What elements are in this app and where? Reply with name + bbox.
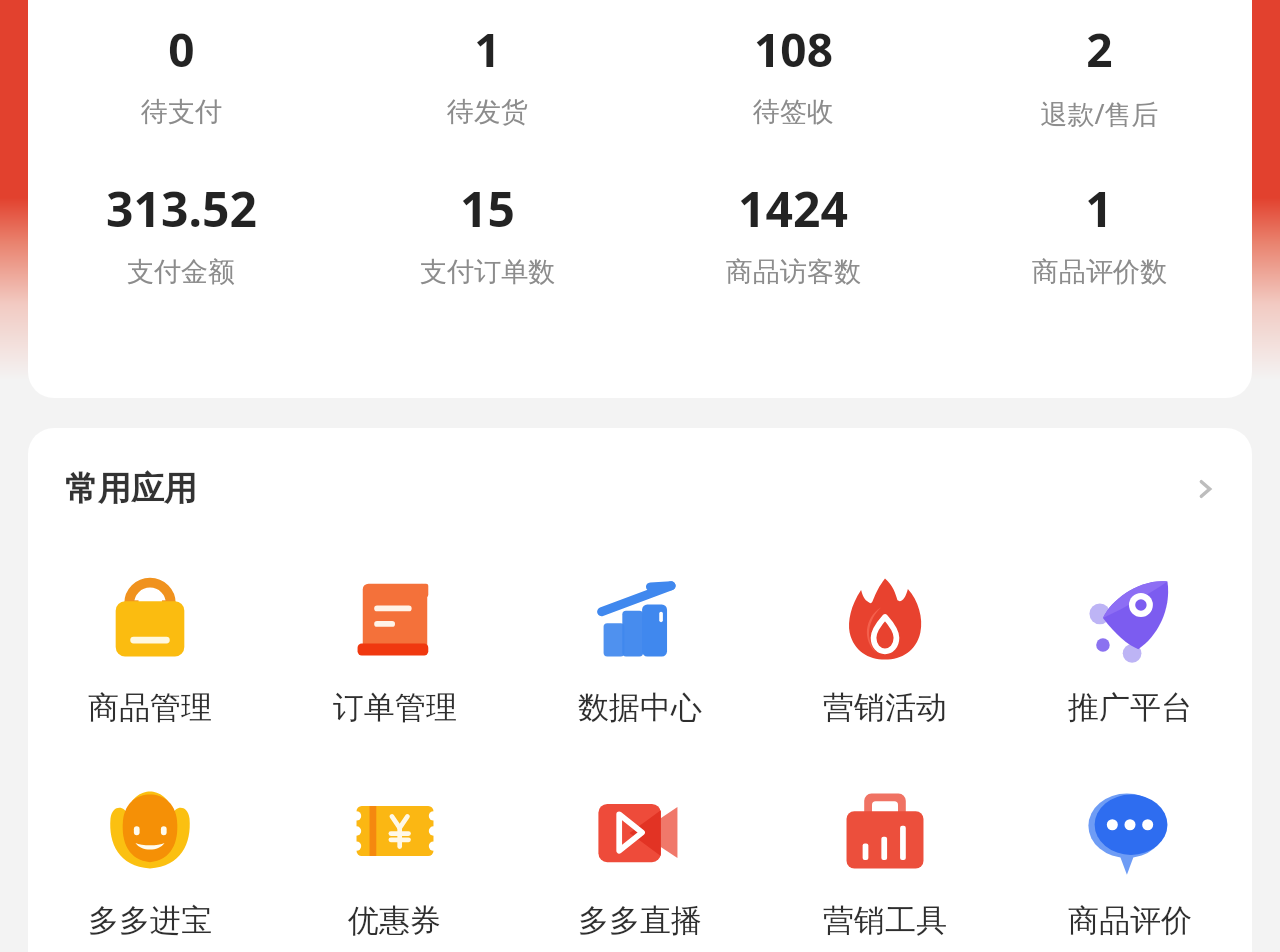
staticText: 商品评价数 (1032, 255, 1167, 289)
staticText: 支付金额 (127, 255, 235, 289)
staticText: 推广平台 (1068, 688, 1192, 727)
button[interactable]: 营销工具 (762, 779, 1007, 940)
staticText: 商品评价 (1068, 901, 1192, 940)
button[interactable]: 1 (334, 16, 640, 131)
staticText: 营销工具 (823, 901, 947, 940)
staticText: 1424 (738, 176, 848, 241)
staticText: 营销活动 (823, 688, 947, 727)
staticText: 待签收 (753, 95, 834, 129)
button[interactable]: 108 (640, 16, 946, 131)
staticText: 优惠券 (348, 901, 441, 940)
button[interactable]: 多多直播 (517, 779, 762, 940)
button[interactable]: 1 (946, 174, 1252, 291)
staticText: 退款/售后 (1040, 95, 1159, 132)
staticText: 待发货 (447, 95, 528, 129)
staticText: 多多直播 (578, 901, 702, 940)
button[interactable]: 15 (334, 174, 640, 291)
button[interactable]: 0 (28, 16, 334, 131)
button[interactable]: 推广平台 (1007, 566, 1252, 727)
staticText: 商品访客数 (726, 255, 861, 289)
button[interactable]: 1424 (640, 174, 946, 291)
button[interactable]: 313.52 (28, 174, 334, 291)
staticText: 商品管理 (88, 688, 212, 727)
button[interactable]: 商品管理 (28, 566, 272, 727)
button[interactable]: 常用应用 (28, 468, 1252, 510)
staticText: 订单管理 (333, 688, 457, 727)
other: More common apps (1192, 476, 1218, 502)
button[interactable]: 多多进宝 (28, 779, 272, 940)
button[interactable]: 营销活动 (762, 566, 1007, 727)
button[interactable]: 商品评价 (1007, 779, 1252, 940)
staticText: 108 (754, 18, 833, 81)
button[interactable]: 优惠券 (272, 779, 517, 940)
staticText: 15 (460, 176, 515, 241)
staticText: 数据中心 (578, 688, 702, 727)
button[interactable]: 2 (946, 16, 1252, 134)
staticText: 多多进宝 (88, 901, 212, 940)
staticText: 0 (168, 18, 195, 81)
staticText: 常用应用 (65, 468, 197, 510)
button[interactable]: 数据中心 (517, 566, 762, 727)
staticText: 2 (1086, 18, 1113, 81)
button[interactable]: 订单管理 (272, 566, 517, 727)
staticText: 1 (1085, 176, 1113, 241)
staticText: 支付订单数 (420, 255, 555, 289)
staticText: 313.52 (106, 176, 257, 241)
staticText: 1 (474, 18, 501, 81)
staticText: 待支付 (141, 95, 222, 129)
